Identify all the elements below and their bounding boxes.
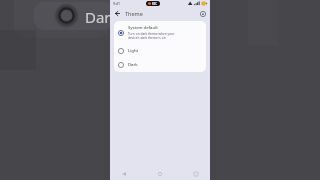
staticText: 9:41 xyxy=(113,1,120,6)
staticText: Dark xyxy=(128,62,138,68)
staticText: Dark xyxy=(85,7,119,27)
button[interactable]: Help xyxy=(198,9,207,18)
button[interactable]: Light xyxy=(114,44,206,58)
button[interactable]: Recent apps xyxy=(192,170,200,178)
staticText: Turn on dark theme when your device's da… xyxy=(128,32,175,40)
button[interactable]: Home xyxy=(156,170,164,178)
staticText: Light xyxy=(128,48,139,54)
button[interactable]: Back xyxy=(113,9,122,18)
button[interactable]: Back xyxy=(120,170,128,178)
staticText: Theme xyxy=(125,10,143,17)
staticText: REC xyxy=(152,2,157,6)
button[interactable]: Dark xyxy=(114,58,206,72)
button[interactable]: System default xyxy=(114,21,206,44)
staticText: System default xyxy=(128,25,158,31)
